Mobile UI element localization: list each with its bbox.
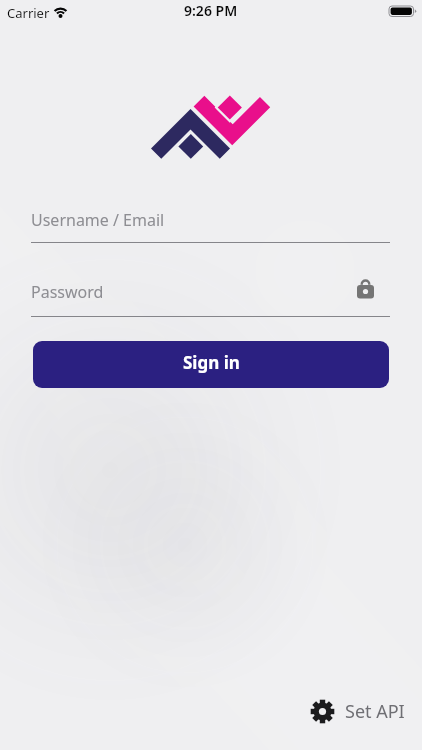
staticText: Set API — [345, 699, 405, 724]
staticText: Sign in — [183, 351, 240, 374]
button[interactable]: Set API — [309, 696, 405, 726]
staticText: 9:26 PM — [184, 1, 238, 20]
button[interactable]: Password — [31, 272, 390, 317]
staticText: Password — [31, 281, 104, 303]
staticText: Username / Email — [31, 209, 165, 231]
staticText: Carrier — [7, 4, 50, 22]
button[interactable]: Username / Email — [31, 200, 390, 244]
button[interactable]: Sign in — [33, 341, 389, 388]
